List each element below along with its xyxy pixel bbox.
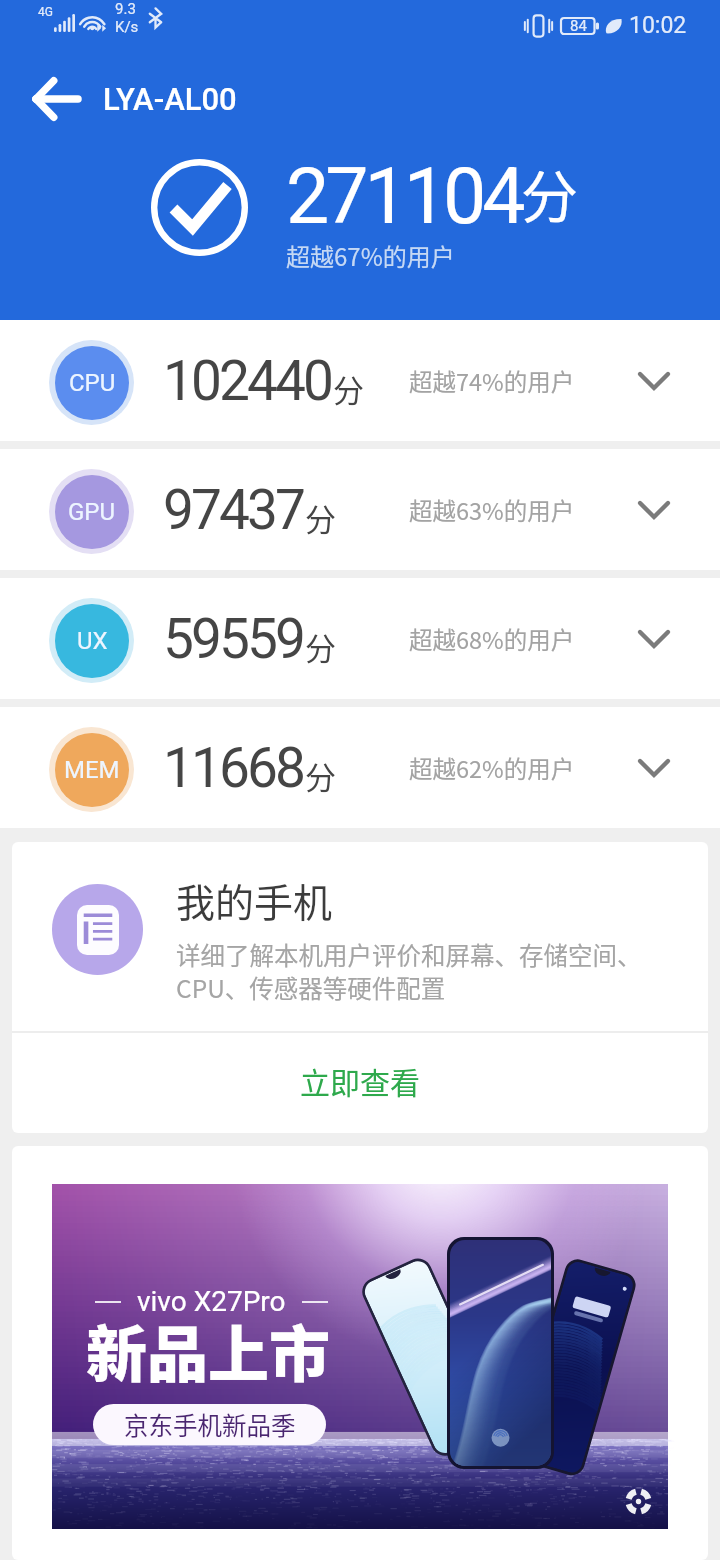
staticText: 分 xyxy=(305,624,336,669)
staticText: 9.3 xyxy=(115,0,136,18)
staticText: 84 xyxy=(570,17,587,35)
staticText: 分 xyxy=(521,152,578,235)
button[interactable]: UX xyxy=(0,578,720,699)
button[interactable]: MEM xyxy=(0,707,720,828)
staticText: 分 xyxy=(333,366,364,411)
staticText: LYA-AL00 xyxy=(103,81,237,117)
staticText: 11668 xyxy=(163,736,304,800)
staticText: 详细了解本机用户评价和屏幕、存储空间、 CPU、传感器等硬件配置 xyxy=(176,937,642,1005)
staticText: 分 xyxy=(305,753,336,798)
staticText: vivo X27Pro xyxy=(137,1285,286,1318)
other: Ad logo xyxy=(625,1488,652,1515)
staticText: 271104 xyxy=(286,152,522,242)
staticText: 10:02 xyxy=(629,12,687,39)
staticText: 97437 xyxy=(163,478,304,542)
staticText: CPU xyxy=(69,369,116,397)
staticText: 59559 xyxy=(163,607,304,671)
staticText: 新品上市 xyxy=(86,1306,331,1394)
staticText: 京东手机新品季 xyxy=(124,1407,296,1442)
staticText: GPU xyxy=(68,498,116,526)
staticText: 102440 xyxy=(163,349,332,413)
staticText: K/s xyxy=(115,18,139,36)
button[interactable]: GPU xyxy=(0,449,720,570)
staticText: 我的手机 xyxy=(176,872,333,928)
button[interactable]: vivo X27Pro xyxy=(52,1184,668,1529)
staticText: 超越62%的用户 xyxy=(409,751,575,785)
staticText: 超越67%的用户 xyxy=(286,238,455,273)
staticText: 分 xyxy=(305,495,336,540)
staticText: 4G xyxy=(38,5,53,19)
staticText: 超越63%的用户 xyxy=(409,493,575,527)
staticText: 超越74%的用户 xyxy=(409,364,575,398)
button[interactable]: Back xyxy=(18,61,94,137)
staticText: 立即查看 xyxy=(300,1059,420,1102)
button[interactable]: 立即查看 xyxy=(12,1033,708,1133)
staticText: 超越68%的用户 xyxy=(409,622,575,656)
button[interactable]: CPU xyxy=(0,320,720,441)
staticText: UX xyxy=(77,627,108,655)
staticText: MEM xyxy=(64,756,120,784)
